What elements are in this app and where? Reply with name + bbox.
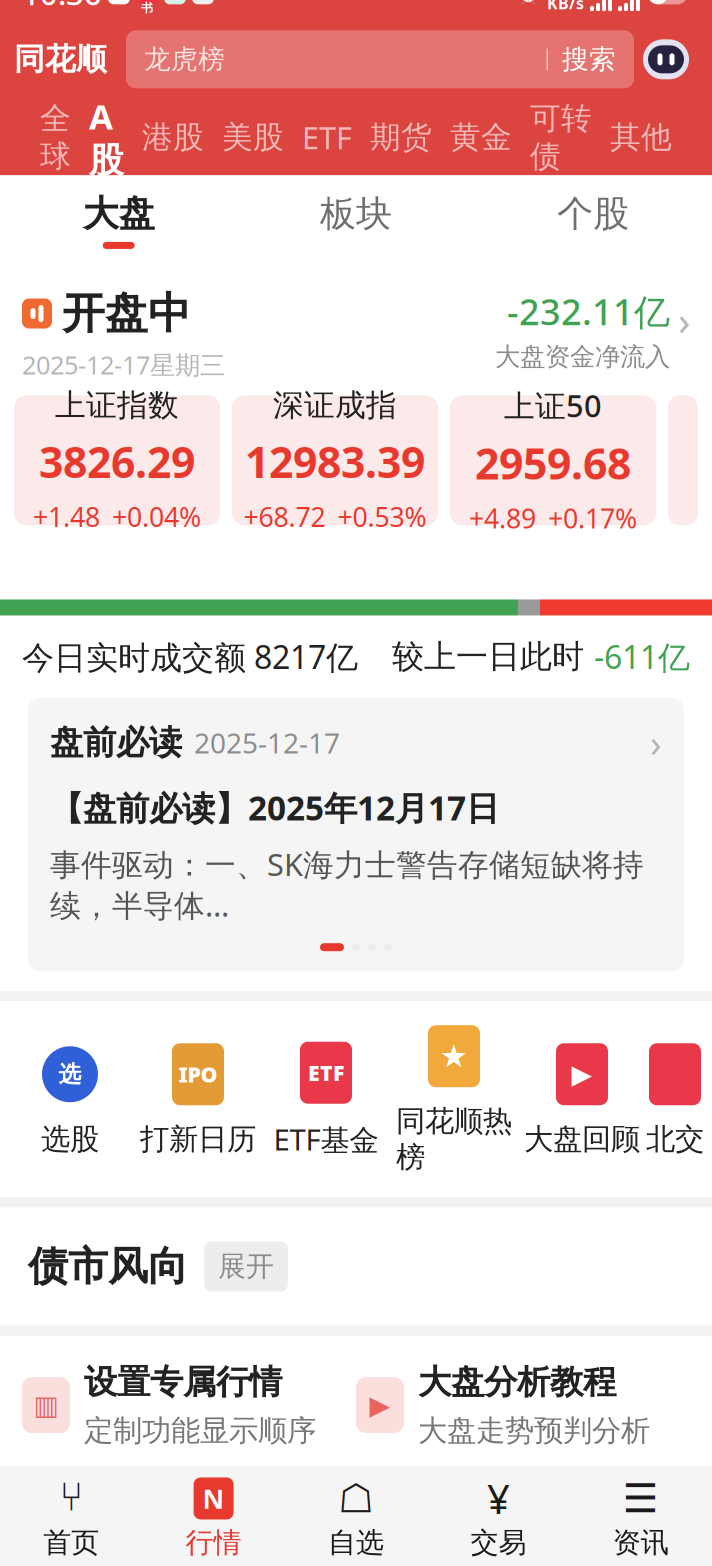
button[interactable]: ☰ bbox=[570, 1477, 712, 1560]
button[interactable]: 上证50 bbox=[450, 395, 656, 525]
button[interactable]: 大盘 bbox=[0, 175, 237, 265]
button[interactable]: 黄金 bbox=[441, 99, 521, 175]
staticText: N bbox=[203, 1481, 225, 1516]
staticText: 大盘回顾 bbox=[524, 1121, 640, 1157]
staticText: ▶ bbox=[571, 1059, 592, 1089]
button[interactable]: ETF bbox=[262, 1040, 390, 1159]
button[interactable]: 期货 bbox=[361, 99, 441, 175]
staticText: ▥ bbox=[33, 1390, 58, 1420]
staticText: 同花顺 bbox=[14, 40, 107, 78]
button[interactable]: ETF bbox=[293, 99, 361, 175]
button[interactable]: 板块 bbox=[237, 175, 475, 265]
staticText: ¥ bbox=[487, 1472, 510, 1525]
staticText: ETF基金 bbox=[273, 1120, 378, 1159]
button[interactable]: ¥ bbox=[427, 1477, 570, 1560]
staticText: 期货 bbox=[370, 118, 432, 156]
staticText: 设置专属行情 bbox=[84, 1362, 282, 1403]
staticText: 交易 bbox=[470, 1525, 526, 1560]
button[interactable]: 展开 bbox=[204, 1241, 288, 1292]
staticText: › bbox=[678, 293, 690, 346]
button[interactable]: AI assistant bbox=[634, 30, 698, 88]
staticText: 大盘 bbox=[83, 192, 155, 236]
button[interactable]: 开盘中 bbox=[0, 265, 712, 395]
staticText: ⑂ bbox=[59, 1479, 83, 1518]
staticText: IPO bbox=[178, 1060, 217, 1088]
staticText: ☰ bbox=[623, 1476, 659, 1521]
staticText: 北交 bbox=[646, 1121, 704, 1157]
staticText: 2025-12-17星期三 bbox=[22, 348, 225, 381]
staticText: 展开 bbox=[218, 1249, 274, 1284]
staticText: +0.04% bbox=[112, 499, 201, 534]
button[interactable]: ▶ bbox=[518, 1041, 646, 1157]
button[interactable]: 上证指数 bbox=[14, 395, 220, 525]
button[interactable]: 深证成指 bbox=[232, 395, 438, 525]
staticText: 2959.68 bbox=[475, 435, 631, 491]
button[interactable]: 全球 bbox=[31, 99, 80, 175]
staticText: 小红书 bbox=[141, 0, 153, 15]
staticText: 龙虎榜 bbox=[144, 43, 225, 76]
staticText: +4.89 bbox=[469, 500, 536, 536]
staticText: 自选 bbox=[328, 1525, 384, 1560]
staticText: A股 bbox=[89, 93, 124, 182]
button[interactable]: ⑂ bbox=[0, 1477, 142, 1560]
staticText: 10:36 bbox=[22, 0, 102, 14]
staticText: -232.11亿 bbox=[507, 287, 670, 335]
staticText: 事件驱动：一、SK海力士警告存储短缺将持续，半导体… bbox=[50, 844, 644, 925]
staticText: 可转债 bbox=[530, 100, 592, 175]
staticText: 资讯 bbox=[613, 1525, 669, 1560]
staticText: 12983.39 bbox=[245, 433, 425, 490]
button[interactable]: ★ bbox=[390, 1023, 518, 1175]
button[interactable]: A股 bbox=[80, 99, 133, 175]
staticText: 行情 bbox=[186, 1525, 242, 1560]
button[interactable]: IPO bbox=[134, 1041, 262, 1157]
staticText: +1.48 bbox=[33, 499, 100, 534]
button[interactable]: 可转债 bbox=[521, 99, 601, 175]
staticText: 开盘中 bbox=[62, 287, 191, 340]
staticText: 全球 bbox=[40, 100, 71, 175]
staticText: -611亿 bbox=[594, 635, 690, 678]
button[interactable]: 港股 bbox=[133, 99, 213, 175]
staticText: 港股 bbox=[142, 118, 204, 156]
staticText: KB/s bbox=[547, 0, 584, 14]
staticText: ▶ bbox=[369, 1390, 390, 1420]
staticText: +0.53% bbox=[337, 499, 426, 534]
button[interactable]: 龙虎榜 bbox=[126, 30, 634, 88]
staticText: 深证成指 bbox=[273, 386, 397, 424]
staticText: 【盘前必读】2025年12月17日 bbox=[50, 785, 499, 830]
button[interactable]: ▥ bbox=[22, 1362, 356, 1449]
button[interactable]: N bbox=[142, 1477, 285, 1560]
staticText: 打新日历 bbox=[140, 1121, 256, 1157]
staticText: 今日实时成交额 8217亿 bbox=[22, 635, 358, 678]
button[interactable]: 个股 bbox=[475, 175, 712, 265]
staticText: › bbox=[650, 718, 662, 767]
button[interactable]: 选 bbox=[6, 1041, 134, 1157]
staticText: +0.17% bbox=[548, 500, 637, 536]
staticText: 选股 bbox=[41, 1121, 99, 1157]
staticText: 首页 bbox=[43, 1525, 99, 1560]
button[interactable]: ☖ bbox=[285, 1477, 427, 1560]
staticText: 上证指数 bbox=[55, 386, 179, 424]
staticText: 其他 bbox=[610, 118, 672, 156]
staticText: 美股 bbox=[222, 118, 284, 156]
staticText: ★ bbox=[439, 1038, 468, 1074]
staticText: 板块 bbox=[320, 192, 392, 236]
staticText: +68.72 bbox=[243, 499, 325, 534]
button[interactable]: 盘前必读 bbox=[28, 698, 684, 971]
staticText: 同花顺热榜 bbox=[396, 1103, 512, 1175]
button[interactable]: ▶ bbox=[356, 1362, 690, 1449]
staticText: ETF bbox=[308, 1058, 344, 1087]
button[interactable]: 跌4018 bbox=[0, 525, 712, 615]
button[interactable]: 美股 bbox=[213, 99, 293, 175]
staticText: 盘前必读 bbox=[50, 722, 182, 763]
staticText: 大盘分析教程 bbox=[418, 1362, 616, 1403]
button[interactable]: 其他 bbox=[601, 99, 681, 175]
button[interactable]: 北交所 bbox=[646, 1041, 706, 1157]
staticText: ETF bbox=[302, 117, 352, 158]
staticText: 大盘走势预判分析 bbox=[418, 1413, 650, 1449]
staticText: 上证50 bbox=[504, 385, 602, 426]
staticText: 大盘资金净流入 bbox=[495, 341, 670, 372]
staticText: 较上一日此时 bbox=[392, 637, 594, 676]
staticText: 定制功能显示顺序 bbox=[84, 1413, 316, 1449]
staticText: 债市风向 bbox=[28, 1242, 188, 1291]
